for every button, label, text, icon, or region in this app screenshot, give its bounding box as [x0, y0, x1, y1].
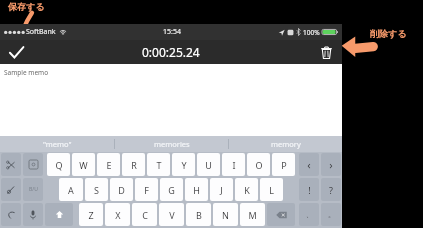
- staticText: B/U: [29, 186, 38, 193]
- staticText: !: [308, 184, 311, 196]
- button[interactable]: B/U: [23, 178, 43, 201]
- button[interactable]: M: [240, 203, 265, 226]
- button[interactable]: ‹: [299, 153, 319, 176]
- staticText: S: [94, 184, 99, 196]
- staticText: ›: [329, 157, 333, 172]
- button[interactable]: [267, 203, 295, 226]
- staticText: B: [196, 209, 202, 221]
- staticText: P: [281, 159, 287, 171]
- button[interactable]: G: [160, 178, 183, 201]
- button[interactable]: J: [210, 178, 233, 201]
- staticText: V: [169, 209, 175, 221]
- button[interactable]: [1, 153, 21, 176]
- staticText: 保存する: [8, 1, 45, 12]
- staticText: O: [255, 159, 263, 171]
- staticText: R: [131, 159, 137, 171]
- button[interactable]: Z: [79, 203, 103, 226]
- staticText: Z: [88, 209, 94, 221]
- staticText: X: [115, 209, 121, 221]
- button[interactable]: Sample memo: [0, 64, 342, 136]
- button[interactable]: D: [110, 178, 133, 201]
- staticText: SoftBank: [26, 27, 56, 37]
- staticText: 100%: [303, 28, 320, 37]
- button[interactable]: E: [97, 153, 120, 176]
- staticText: G: [168, 184, 175, 196]
- staticText: Sample memo: [4, 68, 49, 77]
- button[interactable]: B: [186, 203, 211, 226]
- button[interactable]: ?: [321, 178, 341, 201]
- staticText: K: [244, 184, 250, 196]
- button[interactable]: R: [122, 153, 145, 176]
- button[interactable]: [23, 203, 43, 226]
- staticText: H: [193, 184, 200, 196]
- staticText: E: [106, 159, 112, 171]
- staticText: A: [68, 184, 74, 196]
- staticText: T: [156, 159, 162, 171]
- staticText: 15:54: [163, 27, 181, 37]
- button[interactable]: Save: [5, 41, 27, 63]
- staticText: C: [142, 209, 148, 221]
- staticText: M: [248, 209, 257, 221]
- button[interactable]: X: [105, 203, 130, 226]
- staticText: U: [205, 159, 212, 171]
- button[interactable]: Delete: [315, 41, 337, 63]
- staticText: ‹: [307, 157, 311, 172]
- staticText: memory: [271, 139, 301, 149]
- button[interactable]: [23, 153, 43, 176]
- button[interactable]: L: [260, 178, 283, 201]
- button[interactable]: C: [132, 203, 157, 226]
- staticText: "memo": [43, 139, 72, 149]
- staticText: D: [118, 184, 125, 196]
- staticText: I: [232, 159, 236, 171]
- button[interactable]: S: [85, 178, 108, 201]
- button[interactable]: [1, 178, 21, 201]
- button[interactable]: Y: [172, 153, 195, 176]
- button[interactable]: F: [135, 178, 158, 201]
- button[interactable]: H: [185, 178, 208, 201]
- button[interactable]: [1, 203, 21, 226]
- staticText: W: [79, 159, 88, 171]
- staticText: 、: [306, 210, 313, 219]
- button[interactable]: memory: [229, 136, 342, 152]
- button[interactable]: memories: [115, 136, 228, 152]
- button[interactable]: U: [197, 153, 220, 176]
- button[interactable]: O: [247, 153, 270, 176]
- button[interactable]: A: [59, 178, 83, 201]
- button[interactable]: [45, 203, 73, 226]
- button[interactable]: !: [299, 178, 319, 201]
- staticText: Y: [181, 159, 187, 171]
- button[interactable]: K: [235, 178, 258, 201]
- button[interactable]: "memo": [0, 136, 114, 152]
- staticText: 。: [328, 210, 335, 219]
- button[interactable]: ›: [321, 153, 341, 176]
- button[interactable]: I: [222, 153, 245, 176]
- button[interactable]: V: [159, 203, 184, 226]
- staticText: F: [144, 184, 149, 196]
- staticText: 削除する: [370, 28, 407, 39]
- staticText: J: [220, 184, 223, 196]
- button[interactable]: W: [72, 153, 95, 176]
- staticText: L: [269, 184, 274, 196]
- button[interactable]: T: [147, 153, 170, 176]
- button[interactable]: N: [213, 203, 238, 226]
- staticText: Q: [55, 159, 63, 171]
- staticText: N: [222, 209, 229, 221]
- staticText: memories: [154, 139, 190, 149]
- button[interactable]: Q: [47, 153, 70, 176]
- staticText: ?: [329, 184, 333, 196]
- button[interactable]: P: [272, 153, 295, 176]
- staticText: 0:00:25.24: [142, 44, 200, 60]
